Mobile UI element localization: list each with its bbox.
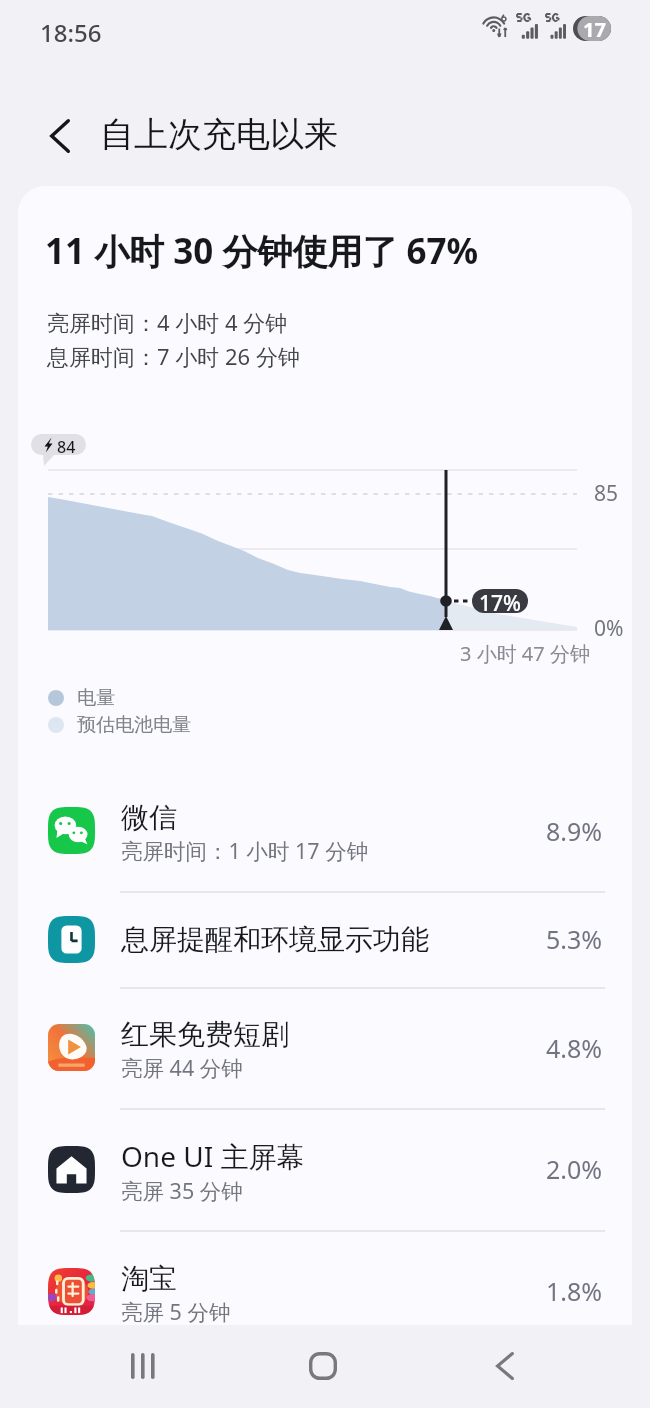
- staticText: 电量: [77, 686, 115, 710]
- staticText: 11 小时 30 分钟使用了 67%: [45, 227, 479, 275]
- staticText: 息屏提醒和环境显示功能: [121, 922, 429, 957]
- button[interactable]: Back: [31, 107, 89, 165]
- staticText: 微信: [121, 800, 177, 835]
- staticText: 0%: [594, 614, 624, 643]
- button[interactable]: 红果免费短剧: [18, 987, 632, 1108]
- staticText: 淘宝: [121, 1261, 177, 1296]
- staticText: One UI 主屏幕: [121, 1137, 305, 1175]
- button[interactable]: 微信: [18, 770, 632, 891]
- staticText: 8.9%: [546, 814, 603, 848]
- staticText: 85: [594, 479, 619, 508]
- button[interactable]: 息屏提醒和环境显示功能: [18, 891, 632, 987]
- staticText: 5.3%: [546, 922, 603, 956]
- staticText: 4.8%: [546, 1031, 603, 1065]
- button[interactable]: One UI 主屏幕: [18, 1108, 632, 1230]
- staticText: 18:56: [40, 16, 102, 49]
- staticText: 预估电池电量: [77, 713, 191, 737]
- staticText: 84: [57, 436, 76, 458]
- button[interactable]: 淘宝: [18, 1230, 632, 1325]
- staticText: 亮屏时间：1 小时 17 分钟: [121, 836, 369, 865]
- button[interactable]: Home: [293, 1338, 353, 1394]
- staticText: 17: [583, 16, 606, 41]
- staticText: 3 小时 47 分钟: [460, 640, 590, 667]
- staticText: 红果免费短剧: [121, 1017, 289, 1052]
- staticText: 亮屏 35 分钟: [121, 1176, 243, 1205]
- staticText: 17%: [479, 589, 521, 613]
- staticText: 2.0%: [546, 1152, 603, 1186]
- staticText: 自上次充电以来: [100, 113, 338, 156]
- staticText: 1.8%: [546, 1274, 603, 1308]
- staticText: 亮屏时间：4 小时 4 分钟: [47, 307, 288, 337]
- button[interactable]: Recents: [111, 1338, 171, 1394]
- staticText: 亮屏 5 分钟: [121, 1297, 231, 1325]
- staticText: 亮屏 44 分钟: [121, 1053, 243, 1082]
- button[interactable]: Back: [475, 1338, 535, 1394]
- staticText: 息屏时间：7 小时 26 分钟: [47, 341, 300, 371]
